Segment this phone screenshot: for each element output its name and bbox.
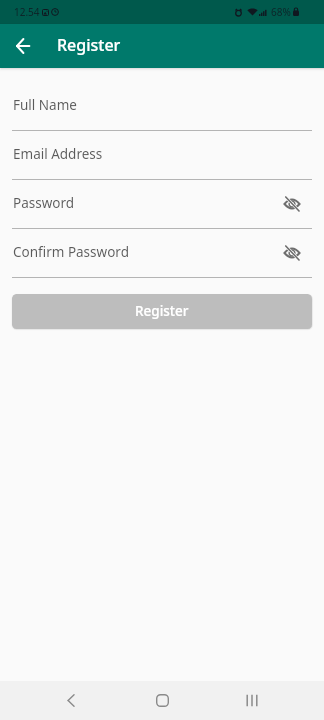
button[interactable]: Password	[12, 197, 312, 229]
button[interactable]: Confirm Password	[12, 246, 312, 278]
staticText: Password	[13, 194, 75, 212]
button[interactable]: Toggle password visibility	[280, 192, 304, 216]
staticText: 68%	[271, 5, 291, 19]
staticText: 12.54	[14, 5, 40, 19]
button[interactable]: Email Address	[12, 148, 312, 180]
button[interactable]: Toggle password visibility	[280, 241, 304, 265]
button[interactable]: Full Name	[12, 99, 312, 131]
button[interactable]: Register	[12, 294, 312, 329]
button[interactable]: Home	[142, 681, 182, 720]
staticText: Email Address	[13, 145, 103, 163]
staticText: Full Name	[13, 96, 77, 114]
button[interactable]: Recents	[232, 681, 272, 720]
button[interactable]: Back	[8, 31, 38, 61]
button[interactable]: Back	[51, 681, 91, 720]
staticText: Register	[57, 34, 121, 56]
staticText: Register	[135, 302, 189, 320]
staticText: Confirm Password	[13, 243, 129, 261]
